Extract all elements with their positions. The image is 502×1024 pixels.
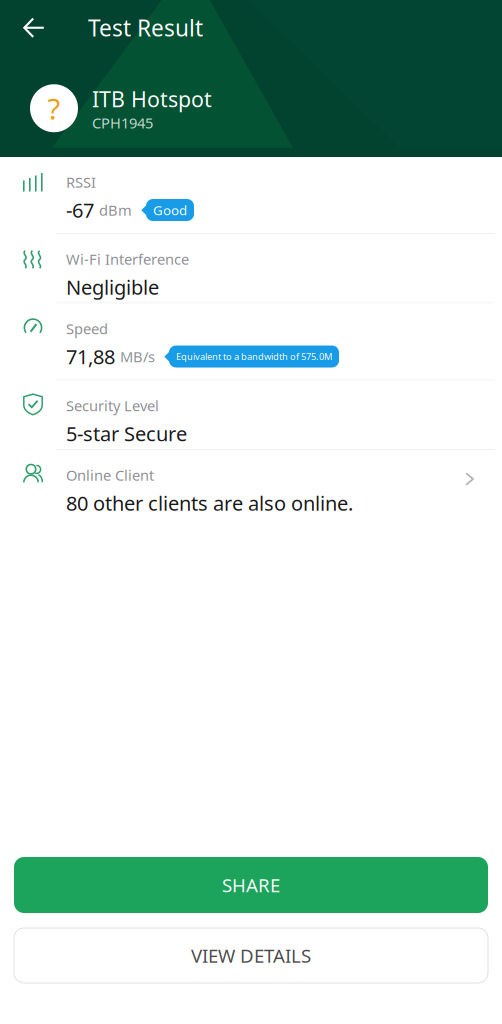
staticText: SHARE — [222, 873, 280, 897]
button[interactable]: Wi-Fi Interference — [0, 234, 502, 302]
staticText: MB/s — [120, 347, 155, 366]
staticText: Equivalent to a bandwidth of 575.0M — [176, 350, 332, 363]
button[interactable]: Online Client — [0, 450, 502, 518]
staticText: Wi-Fi Interference — [66, 249, 189, 269]
staticText: ? — [47, 89, 60, 128]
button[interactable]: VIEW DETAILS — [14, 928, 488, 983]
staticText: Negligible — [66, 274, 159, 300]
staticText: 5-star Secure — [66, 420, 187, 447]
staticText: ITB Hotspot — [92, 85, 212, 113]
button[interactable]: RSSI — [0, 157, 502, 233]
button[interactable]: Security Level — [0, 380, 502, 449]
staticText: 80 other clients are also online. — [66, 490, 353, 516]
staticText: Good — [153, 201, 187, 219]
staticText: Speed — [66, 319, 108, 338]
staticText: RSSI — [66, 172, 96, 192]
button[interactable]: Speed — [0, 303, 502, 379]
staticText: VIEW DETAILS — [191, 943, 311, 968]
staticText: -67 — [66, 197, 94, 223]
button[interactable]: SHARE — [14, 857, 488, 913]
button[interactable]: Back — [12, 6, 56, 50]
staticText: 71,88 — [66, 343, 115, 370]
staticText: Security Level — [66, 396, 159, 415]
staticText: dBm — [99, 200, 132, 220]
staticText: Online Client — [66, 465, 154, 485]
staticText: CPH1945 — [92, 113, 153, 133]
staticText: Test Result — [88, 13, 203, 43]
